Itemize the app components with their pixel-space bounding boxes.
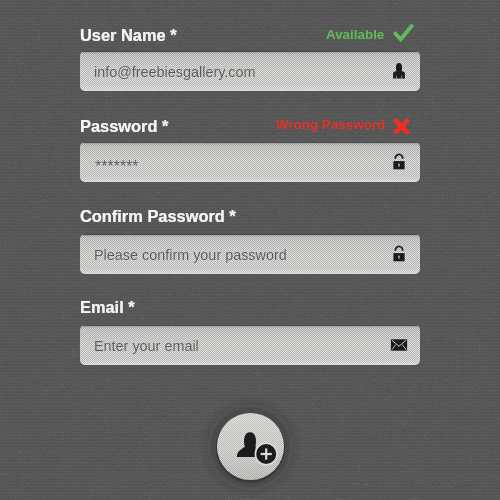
button[interactable]: info@freebiesgallery.com	[80, 51, 420, 91]
staticText: Email *	[80, 298, 135, 316]
other: LOCK	[390, 245, 408, 263]
staticText: Enter your email	[94, 338, 199, 354]
other: PERSON	[390, 62, 408, 80]
staticText: User Name *	[80, 26, 177, 44]
button[interactable]: *******	[80, 142, 420, 182]
other: MAIL	[390, 336, 408, 354]
staticText: Please confirm your password	[94, 247, 287, 263]
button[interactable]: Enter your email	[80, 325, 420, 365]
staticText: Wrong Password	[276, 117, 386, 132]
staticText: *******	[95, 158, 139, 176]
button[interactable]: User Name *	[80, 26, 177, 44]
other: Available	[395, 25, 412, 42]
other: LOCK	[390, 153, 408, 171]
button[interactable]: Email *	[80, 298, 135, 316]
button[interactable]: Confirm Password *	[80, 207, 236, 225]
staticText: info@freebiesgallery.com	[94, 64, 256, 80]
button[interactable]: Please confirm your password	[80, 234, 420, 274]
staticText: Confirm Password *	[80, 207, 236, 225]
button[interactable]: Password *	[80, 117, 169, 135]
staticText: Available	[326, 27, 385, 42]
button[interactable]: Sign up	[217, 413, 284, 480]
other: Error	[393, 118, 410, 135]
staticText: Password *	[80, 117, 169, 135]
